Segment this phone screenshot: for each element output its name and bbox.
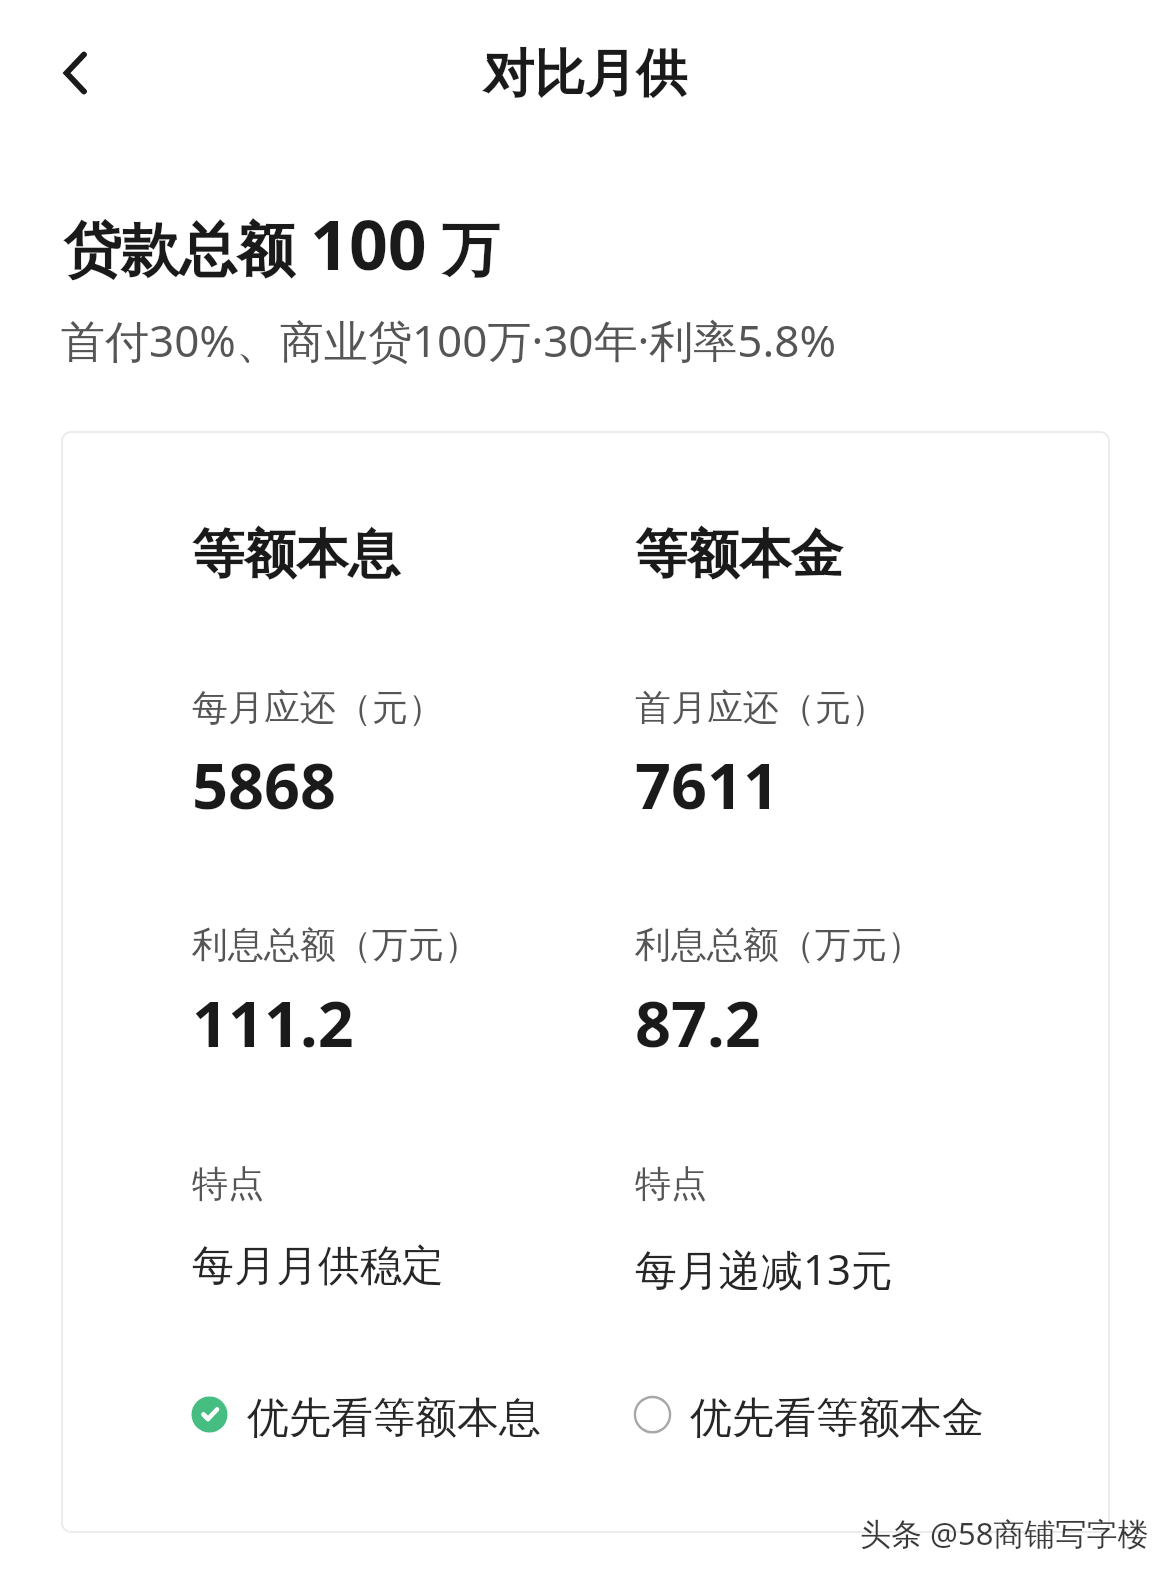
- staticText: 等额本金: [635, 522, 843, 588]
- staticText: 7611: [635, 742, 780, 828]
- staticText: 5868: [192, 742, 337, 828]
- staticText: 等额本息: [192, 522, 400, 588]
- staticText: 首月应还（元）: [635, 685, 887, 730]
- button[interactable]: 优先看等额本息: [190, 1388, 550, 1444]
- staticText: 优先看等额本息: [247, 1392, 541, 1445]
- staticText: 贷款总额 100 万: [63, 197, 500, 290]
- staticText: 87.2: [635, 980, 761, 1066]
- staticText: 优先看等额本金: [690, 1392, 984, 1445]
- staticText: 每月月供稳定: [192, 1240, 444, 1293]
- staticText: 特点: [192, 1161, 264, 1206]
- staticText: 利息总额（万元）: [192, 922, 480, 967]
- staticText: 特点: [635, 1161, 707, 1206]
- button[interactable]: Back: [20, 18, 130, 128]
- staticText: 每月应还（元）: [192, 685, 444, 730]
- staticText: 每月递减13元: [635, 1240, 894, 1297]
- staticText: 对比月供: [483, 42, 687, 106]
- staticText: 利息总额（万元）: [635, 922, 923, 967]
- staticText: 首付30%、商业贷100万·30年·利率5.8%: [61, 310, 837, 370]
- button[interactable]: 优先看等额本金: [633, 1388, 993, 1444]
- staticText: 头条 @58商铺写字楼: [860, 1512, 1149, 1554]
- staticText: 111.2: [192, 980, 354, 1066]
